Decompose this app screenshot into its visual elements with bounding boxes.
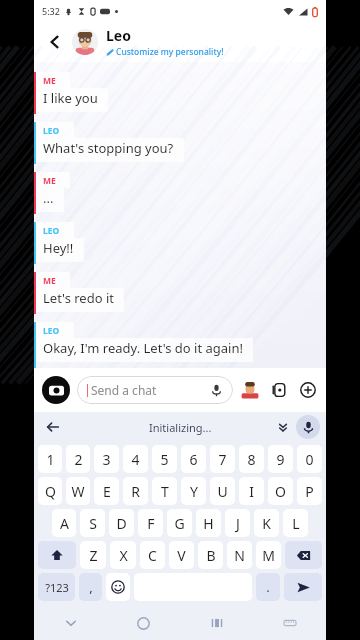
staticText: T xyxy=(161,482,169,501)
staticText: LEO xyxy=(43,125,60,137)
button[interactable]: N xyxy=(227,541,252,569)
button[interactable]: LEO xyxy=(34,222,326,264)
button[interactable]: A xyxy=(52,509,76,537)
button[interactable]: Back xyxy=(42,29,68,55)
button[interactable]: B xyxy=(198,541,223,569)
button[interactable]: Back xyxy=(42,416,64,438)
button[interactable]: Add xyxy=(298,380,318,400)
button[interactable]: Gallery xyxy=(269,380,289,400)
staticText: LEO xyxy=(43,225,60,237)
button[interactable]: LEO xyxy=(34,322,326,368)
button[interactable]: 7 xyxy=(210,445,235,473)
button[interactable]: Backspace xyxy=(285,541,322,569)
button[interactable]: W xyxy=(66,477,90,505)
staticText: L xyxy=(292,514,300,533)
staticText: 0 xyxy=(305,450,314,469)
button[interactable]: D xyxy=(109,509,134,537)
staticText: B xyxy=(206,546,216,565)
button[interactable]: S xyxy=(80,509,105,537)
staticText: Z xyxy=(89,546,98,565)
staticText: ... xyxy=(43,189,54,207)
button[interactable]: F xyxy=(138,509,163,537)
staticText: Send a chat xyxy=(91,382,210,398)
staticText: Y xyxy=(190,482,198,501)
staticText: 5 xyxy=(160,450,169,469)
button[interactable]: 2 xyxy=(66,445,90,473)
button[interactable]: LEO xyxy=(34,122,326,164)
staticText: ME xyxy=(43,175,56,187)
staticText: J xyxy=(236,514,240,533)
button[interactable]: 6 xyxy=(181,445,206,473)
staticText: R xyxy=(131,482,140,501)
button[interactable]: Send xyxy=(284,573,322,601)
staticText: F xyxy=(147,514,155,533)
button[interactable]: 1 xyxy=(38,445,62,473)
button[interactable]: P xyxy=(297,477,322,505)
button[interactable]: 5 xyxy=(152,445,177,473)
button[interactable]: L xyxy=(283,509,308,537)
button[interactable]: 3 xyxy=(94,445,119,473)
staticText: LEO xyxy=(43,325,60,337)
staticText: X xyxy=(119,546,128,565)
button[interactable]: ME xyxy=(34,272,326,314)
staticText: What's stopping you? xyxy=(43,139,174,157)
button[interactable]: ME xyxy=(34,72,326,114)
button[interactable]: 8 xyxy=(239,445,264,473)
staticText: A xyxy=(60,514,69,533)
button[interactable]: T xyxy=(152,477,177,505)
button[interactable]: Z xyxy=(80,541,106,569)
button[interactable]: Send a chat xyxy=(77,376,233,404)
button[interactable]: Shift xyxy=(38,541,76,569)
button[interactable]: Q xyxy=(38,477,62,505)
button[interactable]: , xyxy=(79,573,102,601)
button[interactable]: O xyxy=(268,477,293,505)
button[interactable]: J xyxy=(225,509,250,537)
staticText: ME xyxy=(43,275,56,287)
button[interactable]: K xyxy=(254,509,279,537)
button[interactable]: Hide keyboard xyxy=(34,606,107,640)
button[interactable]: Stickers xyxy=(240,380,260,400)
button[interactable]: M xyxy=(256,541,281,569)
staticText: V xyxy=(177,546,186,565)
button[interactable]: E xyxy=(94,477,119,505)
button[interactable]: Home xyxy=(107,606,180,640)
button[interactable]: ME xyxy=(34,172,326,214)
staticText: ME xyxy=(43,75,56,87)
staticText: U xyxy=(217,482,228,501)
button[interactable]: C xyxy=(140,541,165,569)
button[interactable]: Leo xyxy=(106,26,318,58)
button[interactable]: 0 xyxy=(297,445,322,473)
button[interactable]: . xyxy=(256,573,280,601)
button[interactable]: Camera xyxy=(42,376,70,404)
button[interactable]: Switch keyboard xyxy=(253,606,326,640)
button[interactable]: X xyxy=(110,541,136,569)
staticText: Q xyxy=(45,482,56,501)
button[interactable]: Emoji xyxy=(106,573,130,601)
staticText: Hey!! xyxy=(43,239,74,257)
button[interactable]: Y xyxy=(181,477,206,505)
staticText: O xyxy=(275,482,286,501)
button[interactable]: 4 xyxy=(123,445,148,473)
button[interactable]: Expand xyxy=(272,416,294,438)
button[interactable]: Voice input xyxy=(296,415,320,439)
staticText: G xyxy=(174,514,185,533)
button[interactable]: Profile avatar xyxy=(72,29,98,55)
staticText: P xyxy=(305,482,314,501)
button[interactable]: ?123 xyxy=(38,573,75,601)
staticText: Initializing... xyxy=(149,420,212,435)
button[interactable]: I xyxy=(239,477,264,505)
staticText: Let's redo it xyxy=(43,289,114,307)
staticText: 7 xyxy=(218,450,227,469)
staticText: K xyxy=(262,514,271,533)
button[interactable]: Recents xyxy=(180,606,253,640)
staticText: 4 xyxy=(131,450,140,469)
button[interactable]: R xyxy=(123,477,148,505)
button[interactable]: V xyxy=(169,541,194,569)
staticText: 8 xyxy=(247,450,256,469)
button[interactable]: U xyxy=(210,477,235,505)
button[interactable]: G xyxy=(167,509,192,537)
button[interactable]: 9 xyxy=(268,445,293,473)
button[interactable]: H xyxy=(196,509,221,537)
staticText: H xyxy=(203,514,214,533)
